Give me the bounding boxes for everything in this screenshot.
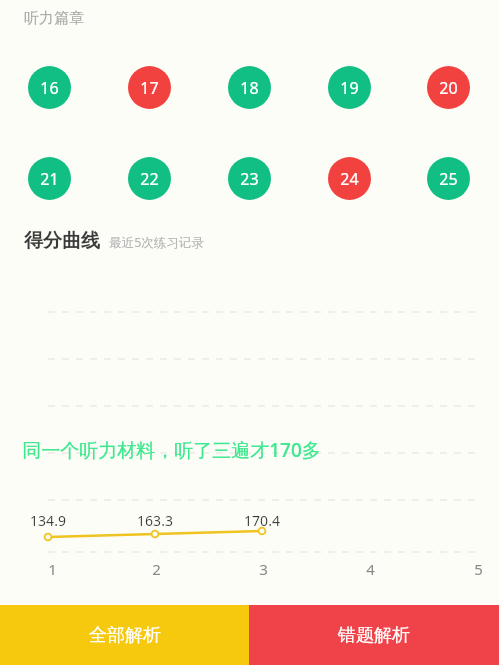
button[interactable]: 17 bbox=[128, 66, 171, 109]
button[interactable]: 25 bbox=[427, 157, 470, 200]
staticText: 17 bbox=[140, 77, 159, 99]
staticText: 16 bbox=[40, 77, 59, 99]
staticText: 听力篇章 bbox=[24, 9, 84, 28]
staticText: 21 bbox=[40, 168, 59, 190]
staticText: 得分曲线 bbox=[24, 229, 100, 253]
button[interactable]: 24 bbox=[328, 157, 371, 200]
button[interactable]: 16 bbox=[28, 66, 71, 109]
button[interactable]: 20 bbox=[427, 66, 470, 109]
button[interactable]: 21 bbox=[28, 157, 71, 200]
button[interactable]: 18 bbox=[228, 66, 271, 109]
staticText: 134.9 bbox=[30, 511, 66, 530]
staticText: 3 bbox=[259, 559, 268, 579]
staticText: 全部解析 bbox=[89, 624, 161, 647]
staticText: 最近5次练习记录 bbox=[109, 234, 204, 251]
button[interactable]: 22 bbox=[128, 157, 171, 200]
staticText: 18 bbox=[240, 77, 259, 99]
button[interactable]: 全部解析 bbox=[0, 605, 249, 665]
staticText: 170.4 bbox=[244, 511, 280, 530]
staticText: 22 bbox=[140, 168, 159, 190]
staticText: 错题解析 bbox=[338, 624, 410, 647]
staticText: 163.3 bbox=[137, 511, 173, 530]
staticText: 20 bbox=[439, 77, 458, 99]
staticText: 24 bbox=[340, 168, 359, 190]
staticText: 4 bbox=[366, 559, 375, 579]
staticText: 1 bbox=[48, 559, 57, 579]
staticText: 2 bbox=[152, 559, 161, 579]
button[interactable]: 错题解析 bbox=[249, 605, 499, 665]
button[interactable]: 23 bbox=[228, 157, 271, 200]
staticText: 23 bbox=[240, 168, 259, 190]
button[interactable]: 19 bbox=[328, 66, 371, 109]
staticText: 25 bbox=[439, 168, 458, 190]
staticText: 19 bbox=[340, 77, 359, 99]
staticText: 5 bbox=[474, 559, 483, 579]
staticText: 同一个听力材料，听了三遍才170多 bbox=[22, 437, 321, 463]
